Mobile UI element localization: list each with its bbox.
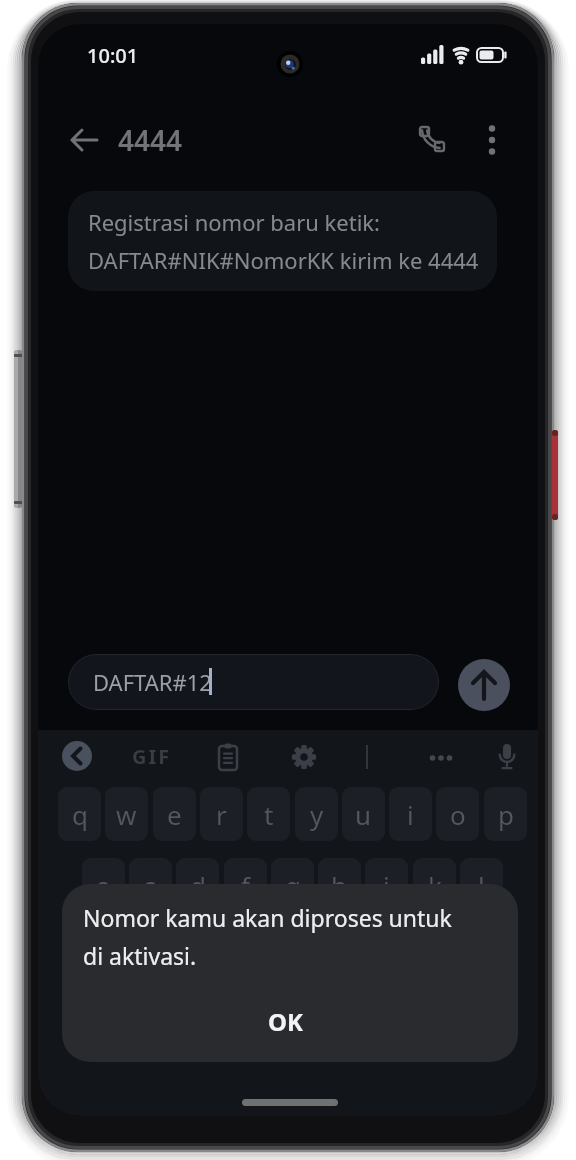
staticText: 4444 bbox=[118, 121, 183, 159]
button[interactable] bbox=[409, 119, 449, 159]
button[interactable] bbox=[458, 659, 510, 711]
staticText: r bbox=[216, 797, 227, 832]
button[interactable]: i bbox=[389, 787, 432, 841]
button[interactable]: o bbox=[436, 787, 479, 841]
button[interactable]: y bbox=[295, 787, 338, 841]
button[interactable]: l bbox=[460, 858, 503, 912]
button[interactable]: g bbox=[271, 858, 314, 912]
button[interactable]: h bbox=[318, 858, 361, 912]
staticText: g bbox=[285, 868, 301, 903]
staticText: p bbox=[498, 797, 514, 832]
staticText: d bbox=[190, 868, 206, 903]
button[interactable]: w bbox=[105, 787, 148, 841]
staticText: f bbox=[241, 868, 250, 903]
staticText: a bbox=[96, 868, 111, 903]
button[interactable]: s bbox=[129, 858, 172, 912]
button[interactable] bbox=[64, 120, 104, 160]
staticText: h bbox=[331, 868, 348, 903]
button[interactable] bbox=[62, 741, 92, 771]
staticText: t bbox=[264, 797, 274, 832]
button[interactable]: p bbox=[484, 787, 527, 841]
button[interactable]: OK bbox=[235, 998, 335, 1044]
staticText: Nomor kamu akan diproses untuk di aktiva… bbox=[83, 902, 452, 972]
staticText: OK bbox=[268, 1005, 303, 1038]
button[interactable]: f bbox=[224, 858, 267, 912]
staticText: k bbox=[428, 868, 442, 903]
staticText: GIF bbox=[132, 743, 172, 770]
button[interactable]: r bbox=[200, 787, 243, 841]
staticText: e bbox=[167, 797, 182, 832]
button[interactable]: GIF bbox=[128, 741, 176, 771]
staticText: o bbox=[450, 797, 466, 832]
staticText: y bbox=[310, 797, 324, 832]
button[interactable]: j bbox=[365, 858, 408, 912]
staticText: DAFTAR#12 bbox=[93, 667, 212, 697]
button[interactable] bbox=[423, 739, 459, 775]
button[interactable]: u bbox=[342, 787, 385, 841]
staticText: q bbox=[72, 797, 88, 832]
staticText: s bbox=[144, 868, 157, 903]
button[interactable]: k bbox=[413, 858, 456, 912]
button[interactable]: e bbox=[153, 787, 196, 841]
staticText: Registrasi nomor baru ketik: DAFTAR#NIK#… bbox=[88, 207, 479, 275]
staticText: l bbox=[478, 868, 485, 903]
button[interactable]: a bbox=[82, 858, 125, 912]
staticText: i bbox=[407, 797, 414, 832]
staticText: j bbox=[383, 868, 390, 903]
button[interactable] bbox=[286, 739, 322, 775]
button[interactable]: DAFTAR#12 bbox=[68, 654, 439, 710]
staticText: u bbox=[355, 797, 372, 832]
staticText: 10:01 bbox=[87, 42, 139, 69]
staticText: w bbox=[116, 797, 137, 832]
button[interactable] bbox=[472, 120, 512, 160]
button[interactable]: d bbox=[176, 858, 219, 912]
button[interactable]: t bbox=[247, 787, 290, 841]
button[interactable]: q bbox=[58, 787, 101, 841]
button[interactable] bbox=[210, 739, 246, 775]
button[interactable] bbox=[489, 739, 525, 775]
